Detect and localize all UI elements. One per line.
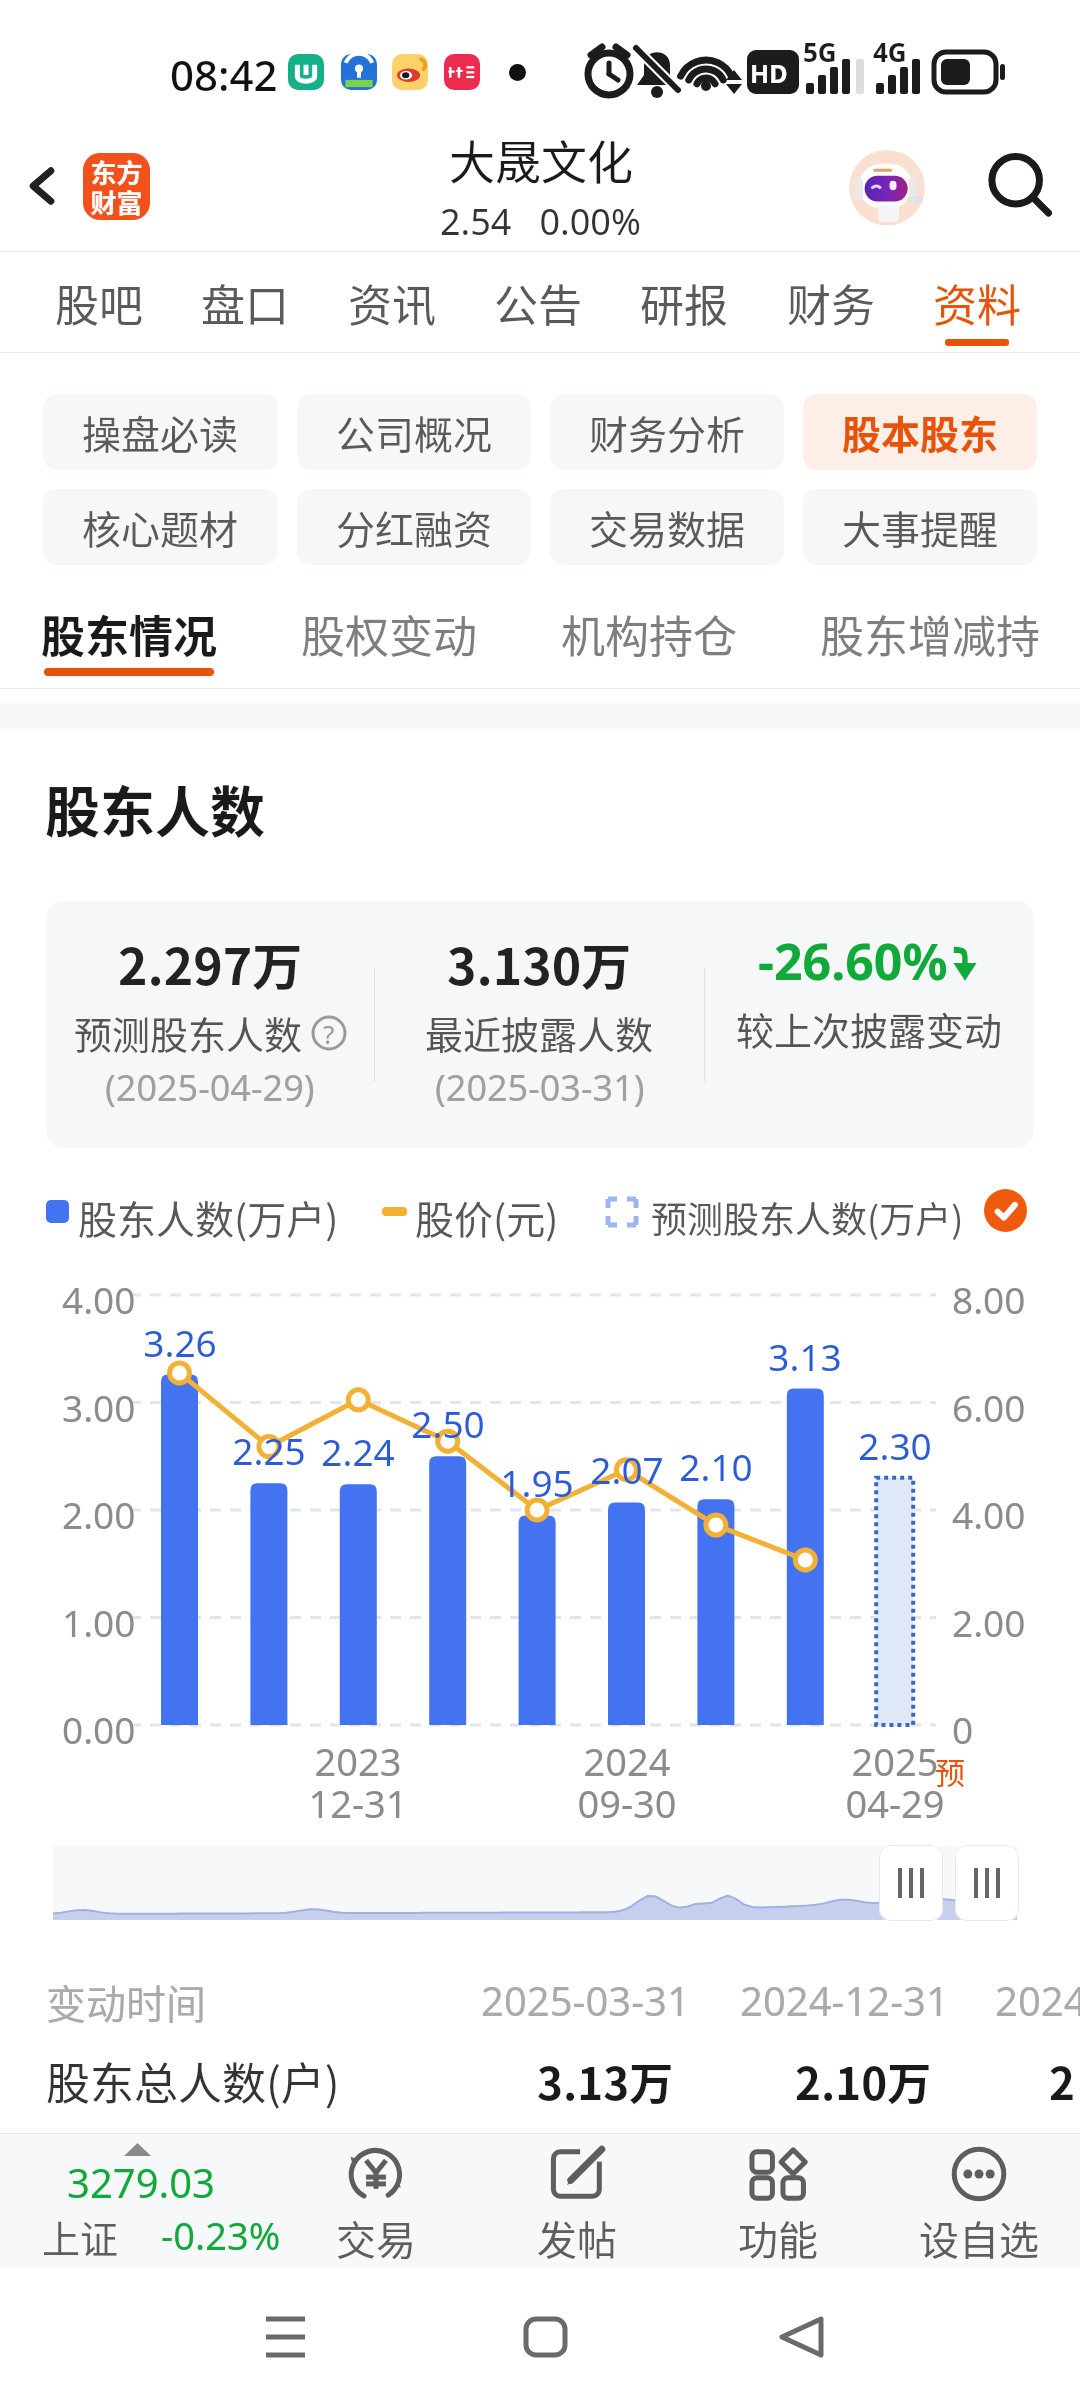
staticText: 资讯 [348, 271, 436, 335]
button[interactable]: 财务分析 [550, 394, 784, 470]
button[interactable]: 变动时间 [0, 1965, 1080, 2127]
staticText: 1.95 [496, 1457, 578, 1507]
staticText: 分红融资 [336, 499, 493, 555]
staticText: 资料 [933, 271, 1021, 335]
staticText: 4.00 [952, 1489, 1026, 1539]
staticText: 1.00 [62, 1597, 136, 1647]
button[interactable]: 核心题材 [43, 489, 278, 565]
button[interactable]: 3.130万 [375, 901, 704, 1148]
staticText: 设自选 [919, 2209, 1039, 2267]
staticText: 操盘必读 [82, 404, 239, 460]
staticText: 变动时间 [46, 1973, 206, 2031]
staticText: 2.30 [854, 1420, 936, 1470]
staticText: 股东人数 [45, 768, 266, 848]
button[interactable]: 分红融资 [297, 489, 531, 565]
staticText: 2.00 [952, 1597, 1026, 1647]
staticText: 股权变动 [301, 602, 477, 666]
staticText: 2025-03-31 [481, 1973, 690, 2027]
button[interactable]: Home [485, 2268, 605, 2400]
button[interactable]: 公告 [465, 252, 611, 353]
staticText: 股吧 [55, 271, 143, 335]
staticText: 股东增减持 [820, 602, 1040, 666]
button[interactable]: Range handle [955, 1845, 1019, 1921]
button[interactable]: -26.60% [705, 901, 1034, 1148]
staticText: 发帖 [537, 2209, 617, 2267]
staticText: HD [750, 56, 788, 90]
button[interactable]: Back [0, 120, 84, 252]
staticText: 交易数据 [589, 499, 746, 555]
staticText: 功能 [738, 2209, 818, 2267]
staticText: 2.54 0.00% [440, 197, 641, 246]
button[interactable]: 3279.03 [0, 2133, 300, 2268]
staticText: 2 [1049, 2049, 1075, 2113]
button[interactable]: 财务 [758, 252, 904, 353]
staticText: 08:42 [170, 46, 278, 103]
staticText: 预 [935, 1749, 965, 1792]
button[interactable]: Range handle [879, 1845, 943, 1921]
button[interactable]: 公司概况 [297, 394, 531, 470]
staticText: 6.00 [952, 1382, 1026, 1432]
button[interactable]: 资料 [904, 252, 1050, 353]
button[interactable]: Recents [225, 2268, 345, 2400]
button[interactable]: Search [960, 120, 1080, 252]
button[interactable]: 2.297万 [46, 901, 374, 1148]
button[interactable]: 发帖 [487, 2133, 667, 2268]
button[interactable]: 设自选 [889, 2133, 1069, 2268]
staticText: 3279.03 [67, 2155, 215, 2209]
button[interactable]: 股本股东 [803, 394, 1037, 470]
button[interactable]: Back [741, 2268, 861, 2400]
button[interactable]: 盘口 [172, 252, 318, 353]
staticText: 较上次披露变动 [736, 1001, 1003, 1056]
staticText: (2025-03-31) [435, 1063, 645, 1112]
button[interactable]: East Money [83, 153, 150, 220]
button[interactable]: 资讯 [319, 252, 465, 353]
staticText: 财务分析 [589, 404, 746, 460]
button[interactable]: 股权变动 [259, 565, 519, 689]
staticText: 大事提醒 [842, 499, 999, 555]
button[interactable]: 大事提醒 [803, 489, 1037, 565]
staticText: 2.10 [675, 1441, 757, 1491]
staticText: 股东人数(万户) [78, 1189, 339, 1245]
staticText: ? [323, 1016, 335, 1051]
staticText: 4.00 [62, 1274, 136, 1324]
staticText: 0.00 [62, 1704, 136, 1754]
staticText: 2.297万 [118, 927, 303, 999]
staticText: 3.130万 [447, 927, 632, 999]
staticText: -0.23% [161, 2209, 281, 2261]
staticText: 3.26 [139, 1317, 221, 1367]
staticText: 4G [873, 34, 907, 69]
staticText: 公司概况 [336, 404, 493, 460]
staticText: 公告 [494, 271, 582, 335]
staticText: 2024-12-31 [740, 1973, 949, 2027]
staticText: 2.07 [586, 1444, 668, 1494]
button[interactable]: Toggle forecast [984, 1189, 1027, 1232]
button[interactable]: 操盘必读 [43, 394, 278, 470]
staticText: 0 [952, 1704, 974, 1754]
staticText: 2023 12-31 [278, 1735, 438, 1829]
staticText: 东方 财富 [90, 153, 143, 220]
button[interactable]: 股吧 [26, 252, 172, 353]
staticText: 最近披露人数 [425, 1005, 654, 1060]
button[interactable]: 交易数据 [550, 489, 784, 565]
staticText: 预测股东人数(万户) [651, 1191, 964, 1243]
staticText: 2024 09-30 [547, 1735, 707, 1829]
button[interactable]: 功能 [688, 2133, 868, 2268]
staticText: 3.13万 [537, 2049, 674, 2113]
staticText: 核心题材 [82, 499, 239, 555]
button[interactable]: 股东情况 [0, 565, 259, 689]
staticText: 5G [803, 34, 837, 69]
button[interactable]: 机构持仓 [519, 565, 779, 689]
button[interactable]: 股东增减持 [800, 565, 1060, 689]
staticText: -26.60% [758, 927, 948, 995]
staticText: 上证 [42, 2209, 119, 2264]
button[interactable]: Assistant [844, 143, 930, 229]
staticText: 2.50 [407, 1398, 489, 1448]
button[interactable]: 交易 [286, 2133, 466, 2268]
staticText: 研报 [640, 271, 728, 335]
staticText: 大晟文化 [449, 126, 633, 193]
staticText: 股价(元) [415, 1189, 559, 1245]
button[interactable]: 研报 [611, 252, 757, 353]
staticText: (2025-04-29) [105, 1063, 315, 1112]
staticText: 机构持仓 [561, 602, 737, 666]
staticText: 2025 04-29 [815, 1735, 975, 1829]
